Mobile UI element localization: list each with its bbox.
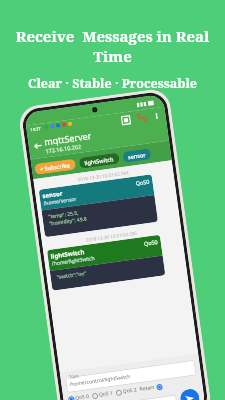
staticText: /home/control/lightSwitch <box>69 373 131 388</box>
staticText: QoS 0 <box>75 393 90 400</box>
button[interactable]: QoS0 <box>47 235 165 291</box>
staticText: "humidity": 49.8 <box>49 215 87 227</box>
staticText: + Subscribe <box>39 161 71 172</box>
staticText: QoS0 <box>135 178 150 186</box>
staticText: "temp": 25.5, <box>48 209 80 221</box>
button[interactable]: + Subscribe <box>34 158 76 175</box>
staticText: lightSwitch <box>50 248 85 261</box>
staticText: "switch":"on" <box>56 270 87 281</box>
button[interactable]: QoS0 <box>39 174 158 237</box>
staticText: mqttServer <box>43 129 92 147</box>
staticText: QoS0 <box>143 238 158 247</box>
button[interactable]: Send <box>179 388 201 400</box>
staticText: 2018-12-30 10:37:03.286 <box>85 230 138 243</box>
button[interactable]: {"switch":"off"} <box>69 392 178 400</box>
button[interactable]: Scan QR <box>119 114 132 126</box>
staticText: sensor <box>42 190 63 200</box>
staticText: 10:37 <box>30 126 42 132</box>
staticText: Clear · Stable · Processable <box>28 75 197 92</box>
button[interactable]: More options <box>150 109 162 122</box>
staticText: Topic <box>69 373 80 379</box>
button[interactable]: Connection <box>135 111 147 124</box>
staticText: lightSwitch <box>84 155 115 166</box>
staticText: 172.16.10.202 <box>45 143 81 154</box>
button[interactable]: /home/control/lightSwitch <box>65 357 196 393</box>
staticText: Receive Messages in Real Time <box>0 26 225 66</box>
staticText: /home/lightSwitch <box>51 255 96 268</box>
button[interactable]: sensor <box>122 148 151 163</box>
button[interactable]: Back <box>31 138 45 153</box>
staticText: sensor <box>127 151 146 160</box>
staticText: QoS 1 <box>99 389 113 398</box>
staticText: QoS 2 <box>122 386 137 395</box>
staticText: /home/sensor <box>43 196 78 207</box>
button[interactable]: lightSwitch <box>79 152 120 169</box>
staticText: 2018-12-30 10:37:02.584 <box>77 169 129 182</box>
staticText: Retain <box>139 384 155 393</box>
